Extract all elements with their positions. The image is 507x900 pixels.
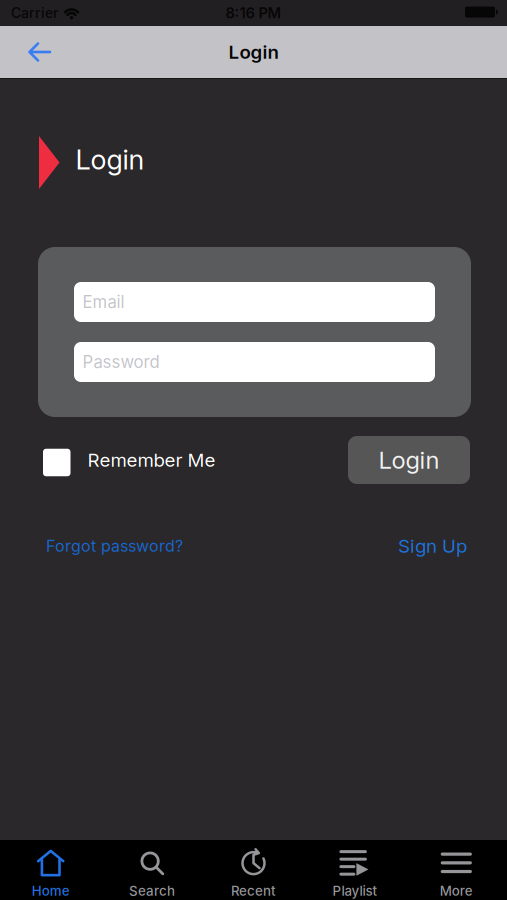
button[interactable]: Password — [74, 342, 435, 382]
button[interactable]: Forgot password? — [46, 537, 183, 555]
staticText: Remember Me — [87, 449, 215, 471]
staticText: Recent — [231, 883, 276, 899]
staticText: Home — [32, 883, 70, 899]
staticText: Password — [82, 352, 159, 372]
staticText: Email — [82, 292, 124, 312]
button[interactable]: More — [406, 841, 507, 899]
button[interactable]: Playlist — [304, 841, 406, 899]
staticText: 8:16 PM — [225, 4, 281, 22]
staticText: Carrier — [11, 5, 58, 21]
staticText: Login — [378, 446, 439, 474]
staticText: Forgot password? — [46, 537, 183, 555]
button[interactable]: Email — [74, 282, 435, 322]
button[interactable]: Recent — [203, 841, 304, 899]
staticText: More — [440, 883, 473, 899]
button[interactable]: Search — [101, 841, 203, 899]
button[interactable]: Login — [348, 436, 470, 484]
button[interactable]: Sign Up — [398, 535, 467, 557]
button[interactable]: Remember Me — [43, 446, 215, 474]
staticText: Playlist — [332, 883, 377, 899]
staticText: Login — [228, 41, 278, 63]
button[interactable]: Home — [0, 841, 101, 899]
staticText: Sign Up — [398, 535, 467, 557]
button[interactable]: Back — [0, 26, 52, 78]
staticText: Search — [129, 883, 175, 899]
staticText: Login — [75, 143, 144, 176]
